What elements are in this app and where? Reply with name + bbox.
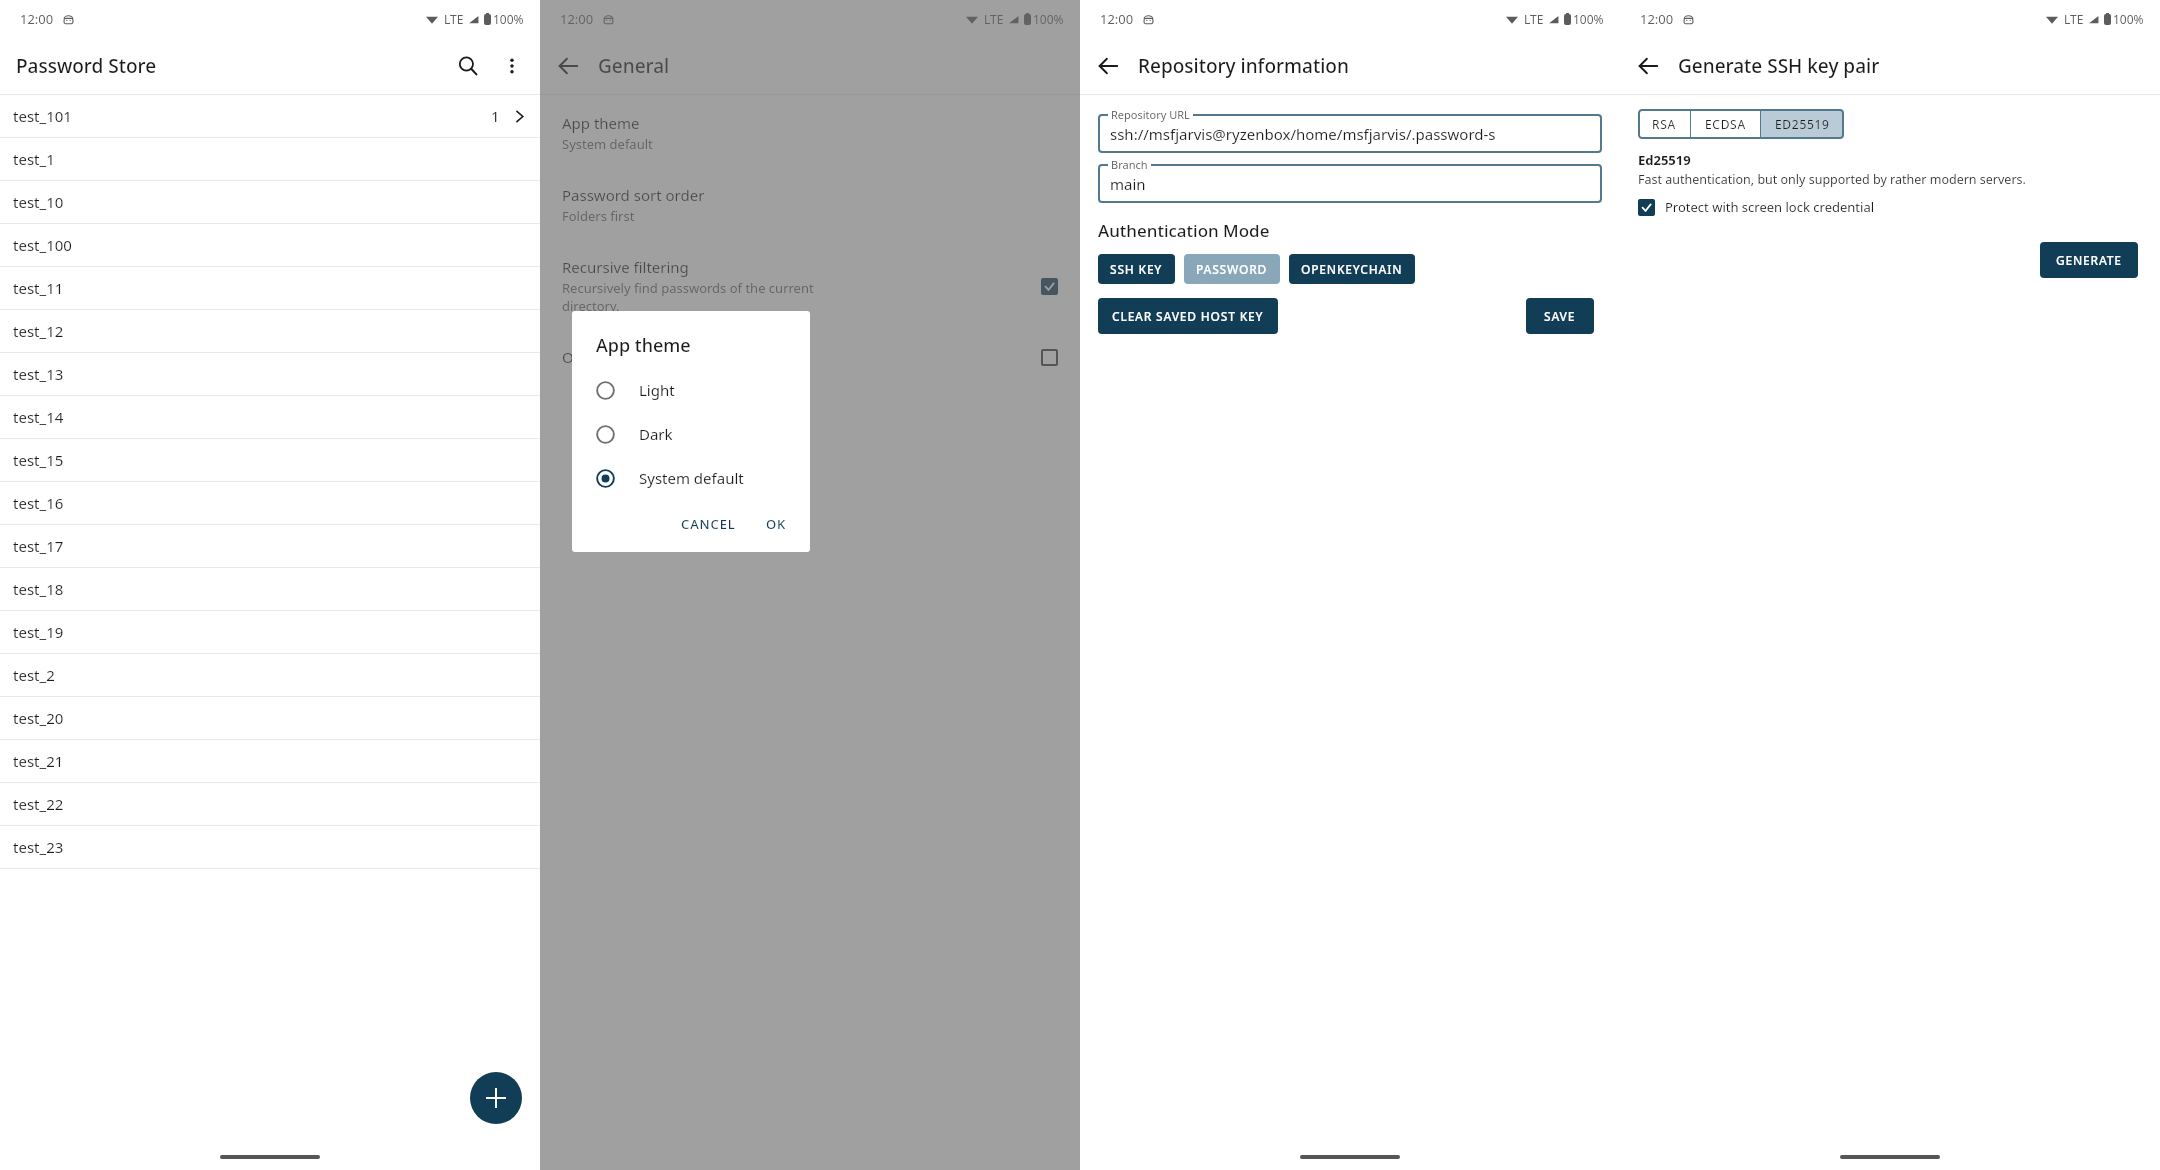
staticText: LTE (984, 11, 1004, 27)
staticText: test_15 (13, 450, 527, 470)
button[interactable]: Recursive filtering (540, 245, 1080, 327)
button[interactable]: test_18 (0, 568, 540, 610)
button[interactable]: test_100 (0, 224, 540, 266)
button[interactable]: test_11 (0, 267, 540, 309)
button[interactable]: test_101 (0, 95, 540, 137)
staticText: test_12 (13, 321, 527, 341)
staticText: test_1 (13, 149, 527, 169)
staticText: 12:00 (560, 10, 594, 28)
staticText: test_16 (13, 493, 527, 513)
button[interactable]: test_22 (0, 783, 540, 825)
staticText: Fast authentication, but only supported … (1638, 171, 2026, 188)
staticText: System default (639, 468, 744, 488)
staticText: 1 (491, 106, 500, 126)
button[interactable]: PASSWORD (1184, 254, 1280, 284)
button[interactable]: CLEAR SAVED HOST KEY (1098, 298, 1278, 334)
button[interactable]: test_13 (0, 353, 540, 395)
staticText: test_17 (13, 536, 527, 556)
staticText: ECDSA (1705, 116, 1746, 132)
staticText: System default (562, 135, 653, 153)
staticText: Password sort order (562, 185, 705, 205)
staticText: OPENKEYCHAIN (1301, 261, 1403, 277)
staticText: test_2 (13, 665, 527, 685)
staticText: test_11 (13, 278, 527, 298)
staticText: Dark (639, 424, 673, 444)
button[interactable]: CANCEL (672, 508, 745, 540)
button[interactable]: RSA (1638, 109, 1690, 139)
staticText: test_22 (13, 794, 527, 814)
staticText: Protect with screen lock credential (1665, 198, 1875, 216)
button[interactable]: GENERATE (2040, 242, 2138, 278)
button[interactable]: More options (490, 44, 534, 88)
staticText: App theme (562, 113, 640, 133)
staticText: General (598, 53, 1074, 79)
button[interactable]: App theme (540, 101, 1080, 165)
button[interactable]: SAVE (1526, 298, 1594, 334)
staticText: 100% (493, 11, 524, 27)
staticText: test_19 (13, 622, 527, 642)
staticText: test_10 (13, 192, 527, 212)
button[interactable]: Light (572, 372, 810, 408)
button[interactable]: test_12 (0, 310, 540, 352)
staticText: CANCEL (681, 515, 736, 533)
staticText: App theme (596, 333, 691, 358)
button[interactable]: Dark (572, 416, 810, 452)
staticText: Generate SSH key pair (1678, 53, 2154, 79)
staticText: 12:00 (20, 10, 54, 28)
staticText: GENERATE (2056, 252, 2122, 268)
staticText: Light (639, 380, 675, 400)
button[interactable]: Search (446, 44, 490, 88)
staticText: 12:00 (1640, 10, 1674, 28)
button[interactable]: test_16 (0, 482, 540, 524)
button[interactable]: test_19 (0, 611, 540, 653)
button[interactable]: test_1 (0, 138, 540, 180)
button[interactable]: test_15 (0, 439, 540, 481)
staticText: test_18 (13, 579, 527, 599)
staticText: Branch (1111, 157, 1148, 172)
button[interactable]: ED25519 (1761, 109, 1844, 139)
button[interactable]: test_17 (0, 525, 540, 567)
button[interactable]: Back (1626, 44, 1670, 88)
button[interactable]: test_14 (0, 396, 540, 438)
button[interactable]: test_21 (0, 740, 540, 782)
staticText: test_20 (13, 708, 527, 728)
button[interactable]: System default (572, 460, 810, 496)
button[interactable]: Back (1086, 44, 1130, 88)
staticText: Repository information (1138, 53, 1614, 79)
staticText: 100% (2113, 11, 2144, 27)
button[interactable]: test_10 (0, 181, 540, 223)
staticText: 100% (1573, 11, 1604, 27)
staticText: Recursively find passwords of the curren… (562, 279, 814, 297)
button[interactable]: SSH KEY (1098, 254, 1175, 284)
button[interactable]: Password sort order (540, 173, 1080, 237)
staticText: Ed25519 (1638, 151, 1691, 169)
staticText: RSA (1652, 116, 1676, 132)
staticText: Password Store (16, 53, 446, 79)
staticText: ssh://msfjarvis@ryzenbox/home/msfjarvis/… (1110, 124, 1496, 144)
button[interactable]: OK (757, 508, 796, 540)
button[interactable]: test_23 (0, 826, 540, 868)
staticText: Recursive filtering (562, 257, 689, 277)
staticText: 12:00 (1100, 10, 1134, 28)
staticText: test_101 (13, 106, 491, 126)
button[interactable]: Open search on start (540, 335, 1080, 379)
staticText: ED25519 (1775, 116, 1830, 132)
staticText: Authentication Mode (1098, 219, 1270, 242)
button[interactable]: Add password (470, 1072, 522, 1124)
button[interactable]: OPENKEYCHAIN (1289, 254, 1415, 284)
button[interactable]: ECDSA (1691, 109, 1760, 139)
staticText: Repository URL (1111, 107, 1190, 122)
button[interactable]: test_2 (0, 654, 540, 696)
staticText: test_100 (13, 235, 527, 255)
staticText: Open search on start (562, 347, 710, 367)
button[interactable]: test_20 (0, 697, 540, 739)
staticText: test_13 (13, 364, 527, 384)
staticText: test_23 (13, 837, 527, 857)
staticText: test_21 (13, 751, 527, 771)
staticText: LTE (2064, 11, 2084, 27)
button[interactable]: Back (546, 44, 590, 88)
button[interactable]: Protect with screen lock credential (1638, 198, 1875, 216)
staticText: LTE (1524, 11, 1544, 27)
staticText: OK (766, 515, 787, 533)
staticText: SAVE (1544, 308, 1576, 324)
